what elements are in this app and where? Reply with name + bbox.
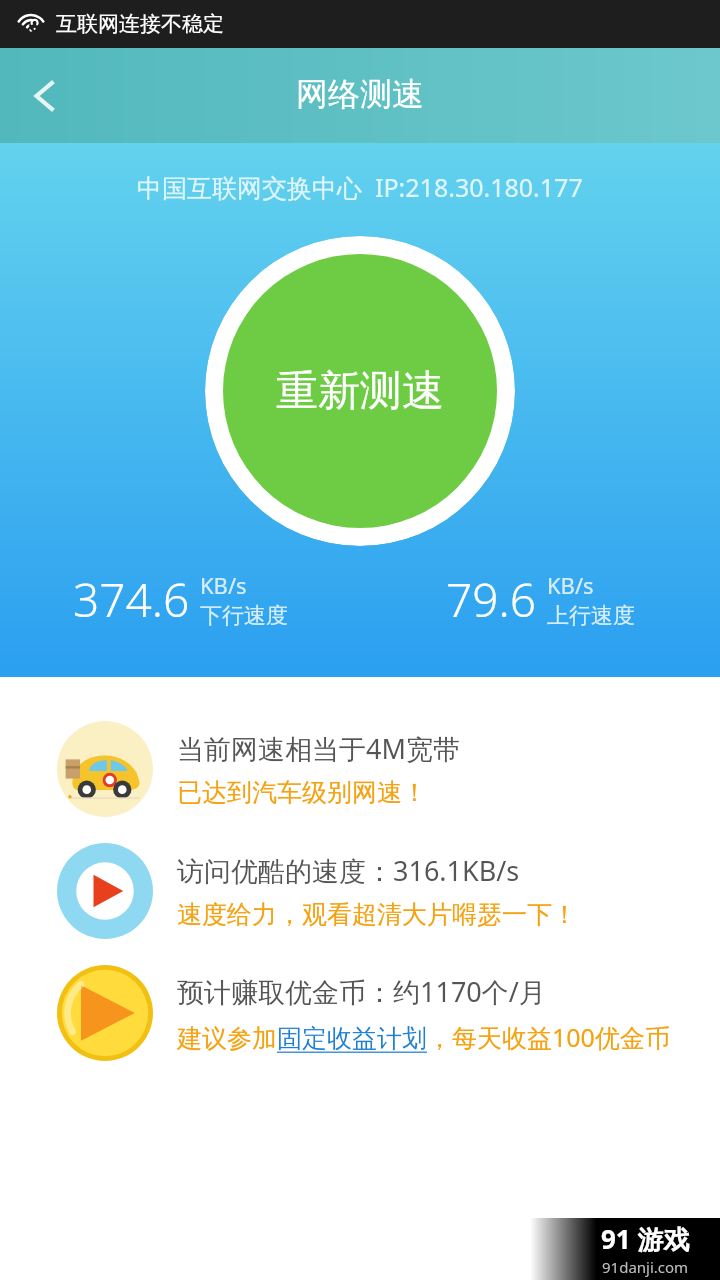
staticText: 374.6 [73,568,190,631]
staticText: 中国互联网交换中心 IP:218.30.180.177 [137,170,583,204]
staticText: 重新测速 [276,365,444,418]
button[interactable]: 访问优酷的速度：316.1KB/s [0,841,720,941]
button[interactable]: Back [14,64,78,128]
button[interactable]: 重新测速 [205,236,515,546]
staticText: KB/s [200,570,247,600]
staticText: 上行速度 [547,602,635,630]
staticText: 已达到汽车级别网速！ [177,777,427,808]
staticText: 下行速度 [200,602,288,630]
staticText: 91danji.com [602,1257,689,1277]
button[interactable]: 当前网速相当于4M宽带 [0,719,720,819]
staticText: 网络测速 [296,74,424,114]
button[interactable]: 预计赚取优金币：约1170个/月 [0,963,720,1063]
staticText: 79.6 [446,568,537,631]
staticText: 访问优酷的速度：316.1KB/s [177,852,520,889]
staticText: 91 游戏 [601,1221,690,1257]
staticText: 建议参加固定收益计划，每天收益100优金币 [177,1020,670,1054]
staticText: KB/s [547,570,594,600]
staticText: 预计赚取优金币：约1170个/月 [177,973,546,1010]
staticText: 速度给力，观看超清大片嘚瑟一下！ [177,899,577,930]
staticText: 互联网连接不稳定 [56,11,224,37]
staticText: 当前网速相当于4M宽带 [177,730,460,767]
